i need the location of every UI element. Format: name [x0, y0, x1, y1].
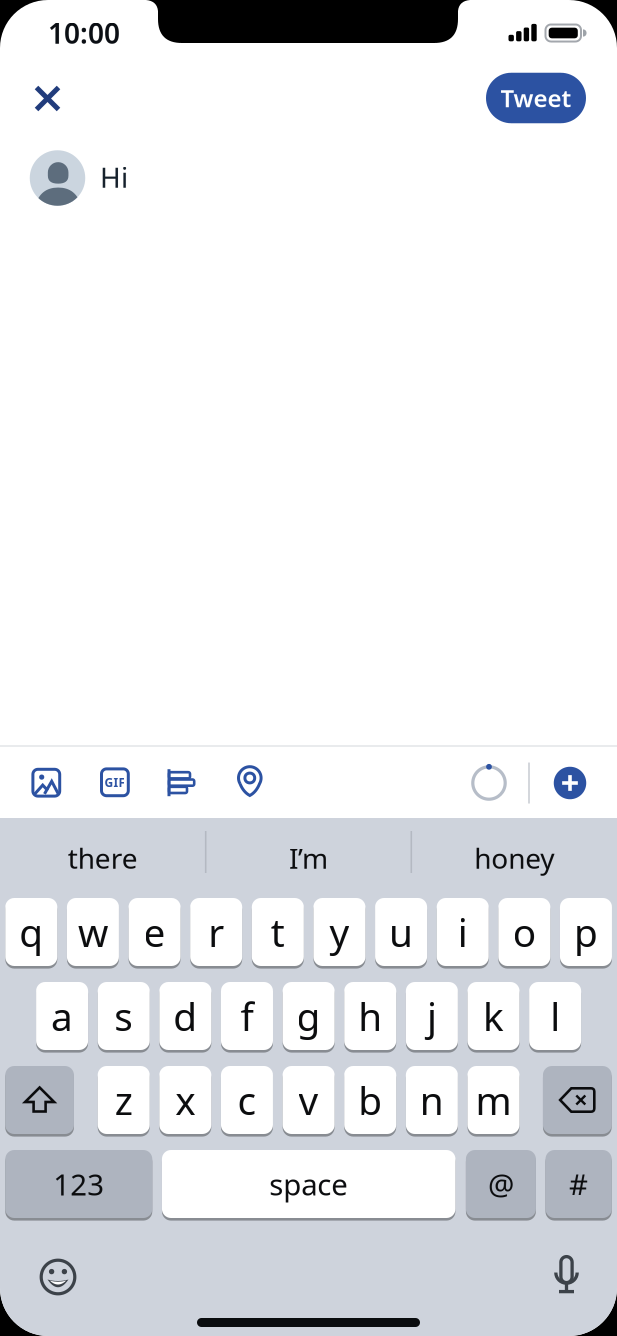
- button[interactable]: d: [0, 0, 617, 1336]
- staticText: l: [550, 990, 560, 1042]
- button[interactable]: 123: [0, 0, 617, 1336]
- button[interactable]: Add a GIF: [100, 767, 130, 797]
- staticText: u: [389, 906, 413, 958]
- button[interactable]: I’m: [208, 827, 408, 889]
- staticText: b: [358, 1074, 382, 1126]
- button[interactable]: there: [3, 827, 203, 889]
- button[interactable]: honey: [414, 827, 614, 889]
- button[interactable]: e: [0, 0, 617, 1336]
- staticText: Hi: [100, 158, 128, 196]
- staticText: @: [488, 1164, 514, 1203]
- button[interactable]: space: [0, 0, 617, 1336]
- staticText: m: [475, 1074, 511, 1126]
- staticText: i: [458, 906, 468, 958]
- button[interactable]: h: [0, 0, 617, 1336]
- staticText: there: [68, 839, 138, 877]
- staticText: z: [115, 1074, 133, 1126]
- button[interactable]: s: [0, 0, 617, 1336]
- button[interactable]: g: [0, 0, 617, 1336]
- button[interactable]: c: [0, 0, 617, 1336]
- staticText: d: [173, 990, 197, 1042]
- staticText: y: [329, 906, 349, 958]
- button[interactable]: Add poll: [164, 766, 198, 800]
- button[interactable]: Tweet: [486, 73, 586, 123]
- staticText: 10:00: [48, 14, 120, 52]
- staticText: o: [513, 906, 536, 958]
- button[interactable]: Delete: [0, 0, 617, 1336]
- button[interactable]: f: [0, 0, 617, 1336]
- button[interactable]: x: [0, 0, 617, 1336]
- staticText: n: [420, 1074, 444, 1126]
- staticText: Tweet: [500, 82, 571, 114]
- button[interactable]: k: [0, 0, 617, 1336]
- button[interactable]: l: [0, 0, 617, 1336]
- staticText: s: [114, 990, 133, 1042]
- button[interactable]: a: [0, 0, 617, 1336]
- staticText: 123: [53, 1164, 104, 1203]
- staticText: c: [237, 1074, 256, 1126]
- staticText: x: [175, 1074, 195, 1126]
- button[interactable]: q: [0, 0, 617, 1336]
- button[interactable]: Add photos or video: [31, 768, 61, 798]
- button[interactable]: y: [0, 0, 617, 1336]
- button[interactable]: r: [0, 0, 617, 1336]
- button[interactable]: #: [0, 0, 617, 1336]
- button[interactable]: n: [0, 0, 617, 1336]
- button[interactable]: o: [0, 0, 617, 1336]
- staticText: GIF: [104, 774, 125, 790]
- button[interactable]: @: [0, 0, 617, 1336]
- staticText: #: [569, 1164, 588, 1203]
- button[interactable]: j: [0, 0, 617, 1336]
- button[interactable]: t: [0, 0, 617, 1336]
- staticText: w: [78, 906, 108, 958]
- button[interactable]: Shift: [0, 0, 617, 1336]
- button[interactable]: i: [0, 0, 617, 1336]
- staticText: q: [19, 906, 43, 958]
- button[interactable]: b: [0, 0, 617, 1336]
- staticText: I’m: [289, 839, 328, 877]
- staticText: g: [297, 990, 321, 1042]
- staticText: k: [483, 990, 504, 1042]
- button[interactable]: Close: [22, 73, 72, 123]
- staticText: f: [240, 990, 253, 1042]
- button[interactable]: z: [0, 0, 617, 1336]
- button[interactable]: Dictate: [544, 1255, 588, 1299]
- staticText: e: [144, 906, 166, 958]
- button[interactable]: m: [0, 0, 617, 1336]
- staticText: j: [427, 990, 437, 1042]
- button[interactable]: Tag location: [235, 765, 269, 799]
- staticText: t: [271, 906, 285, 958]
- button[interactable]: p: [0, 0, 617, 1336]
- button[interactable]: v: [0, 0, 617, 1336]
- button[interactable]: w: [0, 0, 617, 1336]
- staticText: v: [299, 1074, 319, 1126]
- staticText: p: [574, 906, 598, 958]
- button[interactable]: u: [0, 0, 617, 1336]
- staticText: r: [208, 906, 224, 958]
- staticText: a: [51, 990, 73, 1042]
- button[interactable]: Emoji: [36, 1255, 80, 1299]
- staticText: space: [269, 1164, 348, 1203]
- button[interactable]: Add another Tweet: [554, 767, 586, 799]
- staticText: honey: [474, 839, 554, 877]
- staticText: h: [358, 990, 382, 1042]
